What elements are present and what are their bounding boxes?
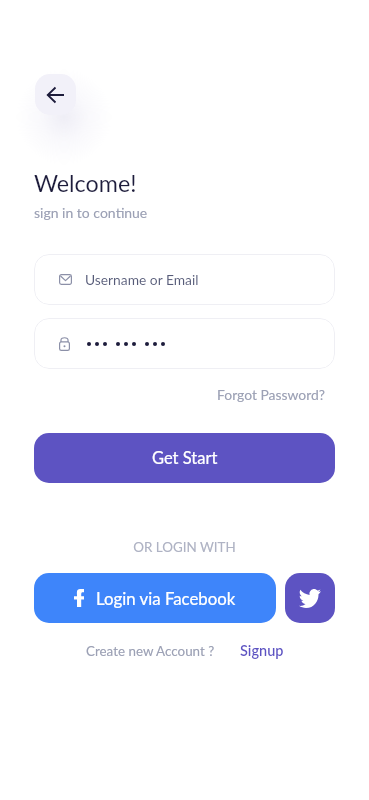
- staticText: Welcome!: [34, 169, 137, 197]
- button[interactable]: Forgot Password?: [34, 386, 325, 403]
- button[interactable]: Username or Email: [34, 254, 335, 305]
- staticText: Get Start: [152, 448, 218, 468]
- button[interactable]: Login via Facebook: [34, 573, 276, 623]
- button[interactable]: Back: [35, 74, 76, 115]
- button[interactable]: Login via Twitter: [285, 573, 335, 623]
- staticText: Forgot Password?: [217, 386, 325, 403]
- staticText: Login via Facebook: [96, 588, 236, 608]
- staticText: sign in to continue: [34, 204, 148, 221]
- button[interactable]: [34, 318, 335, 369]
- button[interactable]: Signup: [240, 642, 284, 659]
- button[interactable]: Create new Account ?: [86, 643, 215, 659]
- staticText: OR LOGIN WITH: [133, 539, 236, 555]
- staticText: Username or Email: [85, 271, 199, 288]
- button[interactable]: Get Start: [34, 433, 335, 483]
